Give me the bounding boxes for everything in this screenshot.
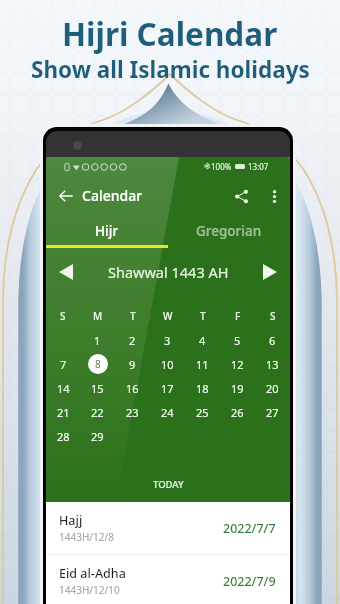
staticText: Hijri Calendar	[62, 12, 278, 55]
staticText: 18	[196, 381, 209, 396]
button[interactable]: 16	[115, 376, 150, 400]
button[interactable]: Back	[52, 182, 80, 210]
staticText: 3	[164, 333, 171, 348]
button[interactable]: 22	[80, 400, 115, 424]
staticText: 15	[91, 381, 104, 396]
staticText: 16	[126, 381, 139, 396]
button[interactable]: Eid al-Adha	[46, 555, 290, 604]
button[interactable]: 8	[80, 352, 115, 376]
button[interactable]: 27	[255, 400, 290, 424]
button[interactable]: 6	[255, 328, 290, 352]
staticText: Hijr	[95, 222, 119, 240]
staticText: W	[163, 309, 173, 323]
staticText: 27	[266, 405, 279, 420]
button[interactable]: Hajj	[46, 502, 290, 554]
button[interactable]	[115, 424, 150, 448]
staticText: 2022/7/9	[223, 573, 276, 590]
staticText: T	[130, 309, 136, 323]
staticText: 11	[196, 357, 209, 372]
staticText: 21	[57, 405, 70, 420]
button[interactable]: 25	[185, 400, 220, 424]
staticText: M	[93, 309, 103, 323]
button[interactable]: 10	[150, 352, 185, 376]
button[interactable]: 21	[46, 400, 80, 424]
staticText: 2022/7/7	[223, 520, 276, 537]
button[interactable]: 28	[46, 424, 80, 448]
button[interactable]: Next month	[250, 248, 290, 295]
button[interactable]: Hijr	[46, 216, 168, 245]
staticText: 1443H/12/10	[59, 583, 120, 597]
staticText: 24	[161, 405, 174, 420]
staticText: 22	[91, 405, 104, 420]
button[interactable]: 11	[185, 352, 220, 376]
staticText: 25	[196, 405, 209, 420]
staticText: 2	[129, 333, 136, 348]
button[interactable]: More options	[261, 183, 287, 209]
button[interactable]: 26	[220, 400, 255, 424]
staticText: 14	[57, 381, 70, 396]
staticText: F	[235, 309, 241, 323]
staticText: 1443H/12/8	[59, 530, 114, 544]
button[interactable]: 18	[185, 376, 220, 400]
button[interactable]: 5	[220, 328, 255, 352]
button[interactable]: Gregorian	[168, 216, 290, 245]
staticText: 100%	[211, 161, 232, 172]
button[interactable]: 13	[255, 352, 290, 376]
staticText: 19	[231, 381, 244, 396]
staticText: 20	[266, 381, 279, 396]
staticText: 26	[231, 405, 244, 420]
staticText: Shawwal 1443 AH	[108, 262, 229, 282]
staticText: 29	[91, 429, 104, 444]
button[interactable]: 4	[185, 328, 220, 352]
staticText: Show all Islamic holidays	[31, 54, 310, 85]
staticText: S	[60, 309, 66, 323]
button[interactable]: 23	[115, 400, 150, 424]
button[interactable]: 3	[150, 328, 185, 352]
button[interactable]: 20	[255, 376, 290, 400]
staticText: 17	[161, 381, 174, 396]
staticText: 6	[269, 333, 276, 348]
staticText: S	[270, 309, 276, 323]
button[interactable]: 2	[115, 328, 150, 352]
button[interactable]: 9	[115, 352, 150, 376]
staticText: TODAY	[153, 478, 184, 491]
button[interactable]: 1	[80, 328, 115, 352]
staticText: 13	[266, 357, 279, 372]
button[interactable]: 17	[150, 376, 185, 400]
staticText: 8	[95, 357, 101, 371]
staticText: Hajj	[59, 512, 83, 529]
button[interactable]: Share	[227, 182, 255, 210]
staticText: 4	[199, 333, 206, 348]
staticText: 13:07	[248, 161, 269, 172]
staticText: 10	[161, 357, 174, 372]
staticText: 12	[231, 357, 244, 372]
staticText: Gregorian	[196, 222, 262, 240]
button[interactable]: 24	[150, 400, 185, 424]
button[interactable]: 14	[46, 376, 80, 400]
staticText: 23	[126, 405, 139, 420]
button[interactable]: 12	[220, 352, 255, 376]
staticText: Calendar	[82, 186, 143, 205]
staticText: Eid al-Adha	[59, 565, 126, 582]
staticText: 5	[234, 333, 241, 348]
button[interactable]: 7	[46, 352, 80, 376]
staticText: 9	[129, 357, 136, 372]
staticText: 1	[94, 333, 101, 348]
button[interactable]: 15	[80, 376, 115, 400]
staticText: 28	[57, 429, 70, 444]
button[interactable]: 29	[80, 424, 115, 448]
staticText: 7	[60, 357, 67, 372]
staticText: T	[200, 309, 206, 323]
button[interactable]: Previous month	[46, 248, 86, 295]
button[interactable]: 19	[220, 376, 255, 400]
